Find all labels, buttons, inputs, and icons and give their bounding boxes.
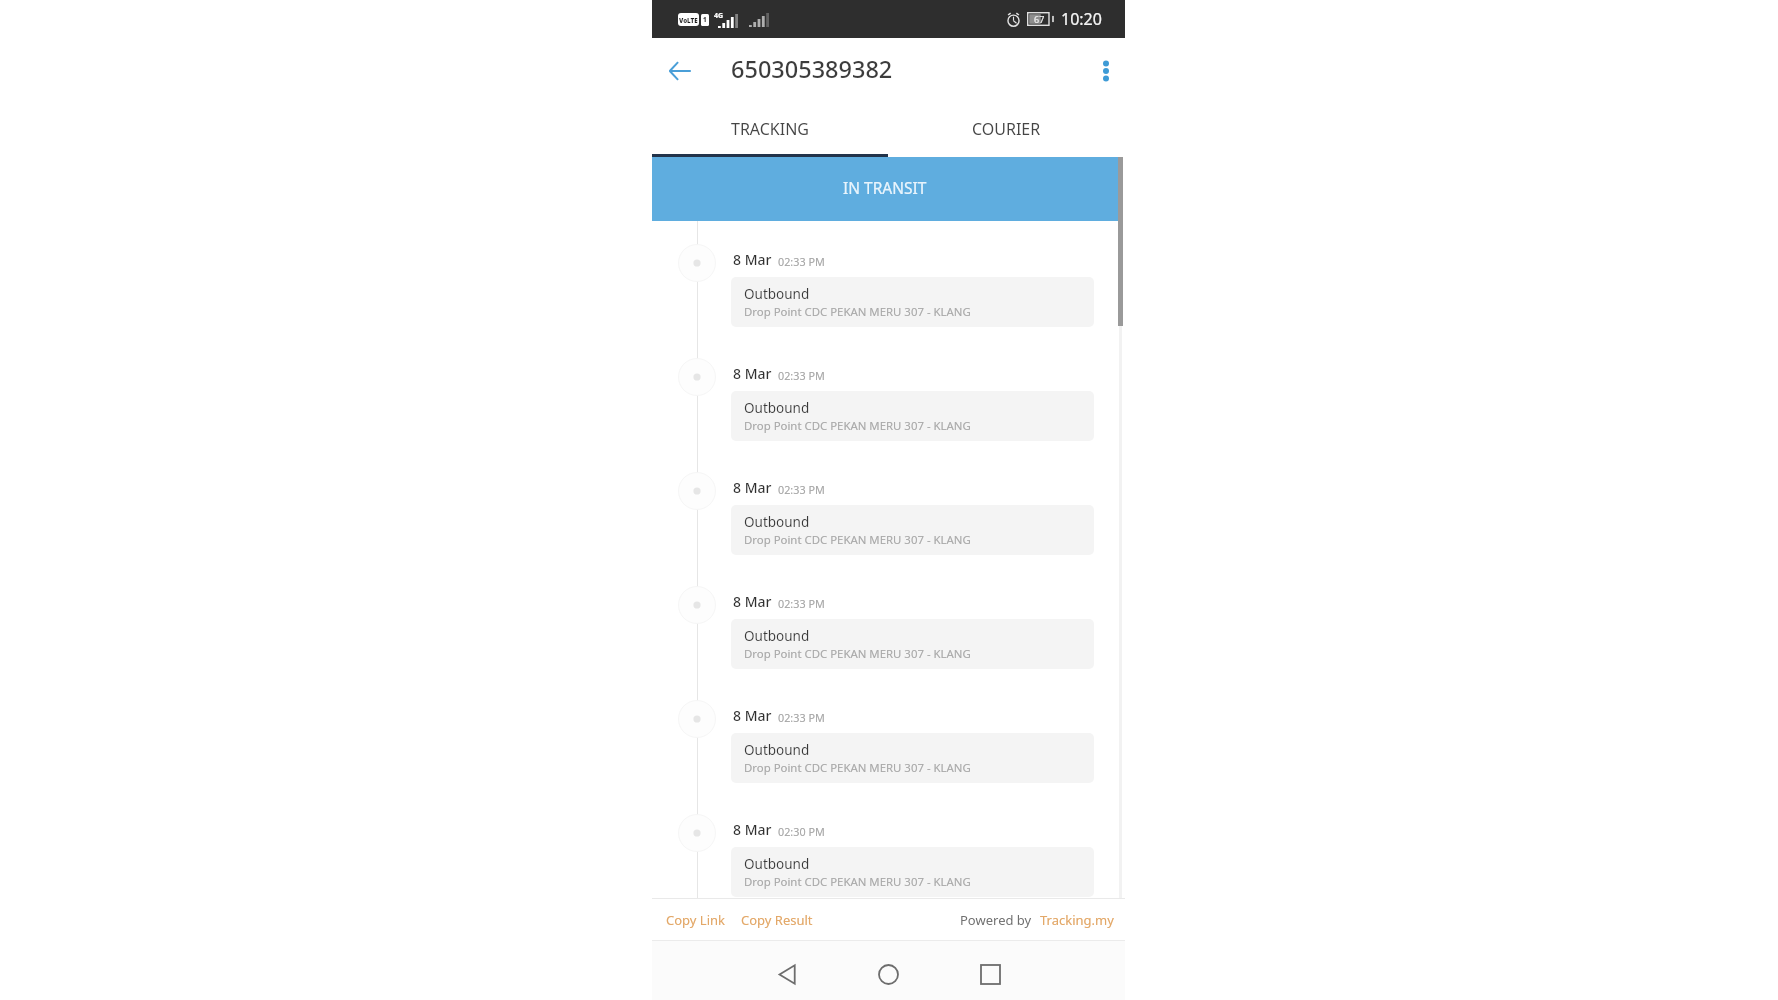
staticText: Outbound	[744, 741, 810, 759]
staticText: Drop Point CDC PEKAN MERU 307 - KLANG	[744, 646, 971, 662]
button[interactable]: Home	[862, 948, 914, 1000]
staticText: 8 Mar	[733, 364, 772, 383]
staticText: VoLTE	[679, 16, 698, 24]
button[interactable]: COURIER	[888, 104, 1125, 154]
staticText: TRACKING	[731, 118, 810, 140]
staticText: 02:33 PM	[778, 368, 825, 383]
staticText: 67	[1034, 13, 1045, 25]
staticText: 650305389382	[731, 53, 893, 85]
staticText: Drop Point CDC PEKAN MERU 307 - KLANG	[744, 304, 971, 320]
button[interactable]: Outbound	[731, 391, 1094, 441]
button[interactable]: More options	[1084, 49, 1128, 93]
staticText: Tracking.my	[1040, 911, 1114, 929]
staticText: 8 Mar	[733, 820, 772, 839]
staticText: 02:30 PM	[778, 824, 825, 839]
staticText: COURIER	[972, 118, 1041, 140]
staticText: Outbound	[744, 855, 810, 873]
button[interactable]: Outbound	[731, 847, 1094, 897]
staticText: Copy Link	[666, 911, 725, 929]
staticText: Outbound	[744, 513, 810, 531]
staticText: Copy Result	[741, 911, 813, 929]
button[interactable]: Copy Link	[661, 905, 730, 935]
button[interactable]: TRACKING	[652, 104, 888, 154]
staticText: Outbound	[744, 399, 810, 417]
staticText: 02:33 PM	[778, 596, 825, 611]
button[interactable]: Outbound	[731, 733, 1094, 783]
staticText: 4G	[714, 11, 724, 21]
button[interactable]: Outbound	[731, 277, 1094, 327]
staticText: 8 Mar	[733, 250, 772, 269]
staticText: 1	[703, 16, 707, 24]
staticText: 02:33 PM	[778, 710, 825, 725]
staticText: 10:20	[1061, 8, 1102, 30]
staticText: Drop Point CDC PEKAN MERU 307 - KLANG	[744, 532, 971, 548]
button[interactable]: Outbound	[731, 505, 1094, 555]
staticText: Powered by	[960, 911, 1035, 929]
button[interactable]: Back	[654, 45, 706, 97]
staticText: 8 Mar	[733, 706, 772, 725]
button[interactable]: Tracking.my	[1035, 905, 1119, 935]
staticText: 02:33 PM	[778, 482, 825, 497]
staticText: 8 Mar	[733, 592, 772, 611]
staticText: Drop Point CDC PEKAN MERU 307 - KLANG	[744, 874, 971, 890]
staticText: Drop Point CDC PEKAN MERU 307 - KLANG	[744, 418, 971, 434]
staticText: Outbound	[744, 627, 810, 645]
button[interactable]: Recents	[964, 948, 1016, 1000]
staticText: 02:33 PM	[778, 254, 825, 269]
staticText: Outbound	[744, 285, 810, 303]
staticText: IN TRANSIT	[843, 177, 927, 198]
staticText: 8 Mar	[733, 478, 772, 497]
button[interactable]: Outbound	[731, 619, 1094, 669]
button[interactable]: Copy Result	[736, 905, 818, 935]
staticText: Drop Point CDC PEKAN MERU 307 - KLANG	[744, 760, 971, 776]
button[interactable]: Back	[761, 948, 813, 1000]
